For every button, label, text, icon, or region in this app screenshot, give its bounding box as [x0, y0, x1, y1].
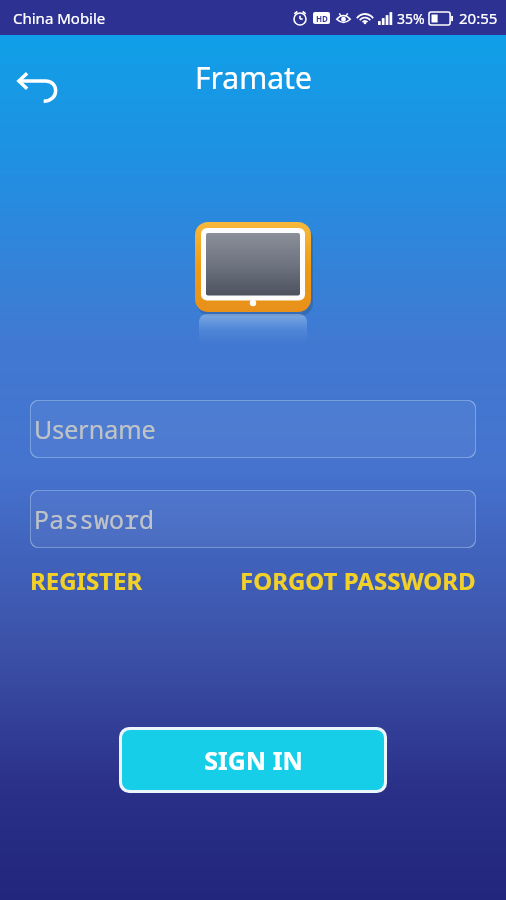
staticText: REGISTER: [30, 564, 143, 597]
button[interactable]: Username: [30, 400, 476, 458]
staticText: FORGOT PASSWORD: [240, 564, 476, 597]
button[interactable]: Back: [8, 49, 72, 113]
button[interactable]: FORGOT PASSWORD: [240, 562, 476, 599]
button[interactable]: Password: [30, 490, 476, 548]
button[interactable]: SIGN IN: [122, 730, 384, 790]
staticText: Framate: [195, 57, 312, 98]
staticText: 20:55: [459, 8, 498, 28]
staticText: Password: [34, 502, 155, 536]
button[interactable]: REGISTER: [30, 562, 143, 599]
staticText: China Mobile: [13, 8, 106, 28]
staticText: Username: [34, 412, 156, 446]
staticText: 35%: [397, 9, 425, 28]
staticText: HD: [316, 13, 328, 24]
staticText: SIGN IN: [204, 743, 303, 777]
